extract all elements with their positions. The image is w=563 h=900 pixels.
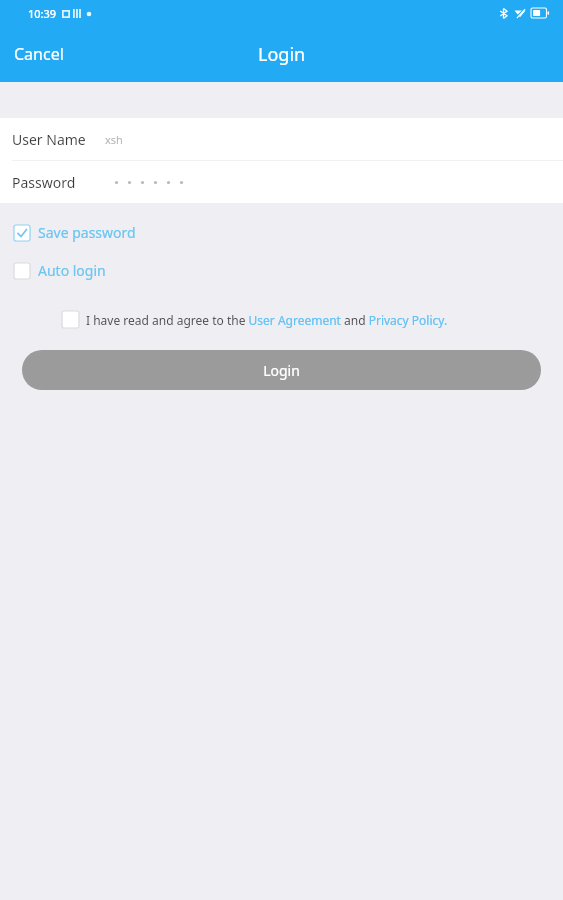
- button[interactable]: Password: [0, 161, 563, 203]
- staticText: Cancel: [14, 43, 64, 65]
- staticText: User Name: [12, 130, 86, 149]
- button[interactable]: I have read and agree to the User Agreem…: [62, 311, 549, 328]
- staticText: Save password: [38, 223, 136, 242]
- button[interactable]: User Name: [0, 118, 563, 160]
- staticText: I have read and agree to the User Agreem…: [86, 312, 448, 328]
- staticText: xsh: [105, 132, 123, 147]
- staticText: Auto login: [38, 261, 106, 280]
- staticText: Password: [12, 173, 76, 192]
- button[interactable]: Cancel: [0, 33, 78, 75]
- staticText: Login: [258, 42, 306, 67]
- staticText: 10:39: [28, 6, 57, 21]
- staticText: Login: [263, 361, 300, 380]
- button[interactable]: Auto login: [0, 258, 120, 283]
- button[interactable]: Save password: [0, 220, 150, 245]
- button[interactable]: Login: [22, 350, 541, 390]
